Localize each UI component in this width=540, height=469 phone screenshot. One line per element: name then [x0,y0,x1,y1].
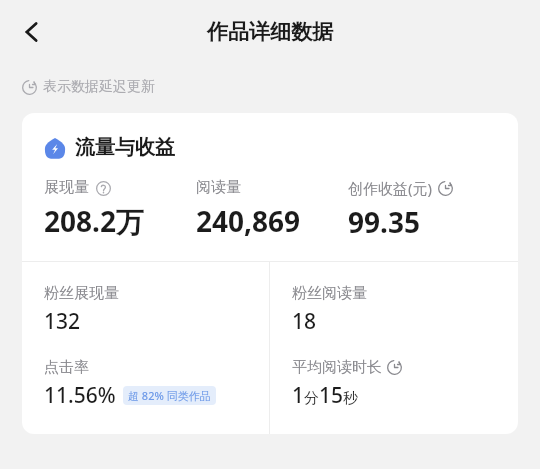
staticText: 132 [44,307,81,336]
staticText: 240,869 [196,202,301,240]
staticText: 超 82% 同类作品 [128,388,211,403]
staticText: 1分15秒 [292,381,359,410]
staticText: 18 [292,307,317,336]
staticText: 作品详细数据 [207,19,333,45]
button[interactable]: 平均阅读时长 [292,358,508,410]
staticText: 阅读量 [196,178,241,197]
staticText: 创作收益(元) [348,178,433,198]
staticText: 11.56% [44,381,116,410]
staticText: 点击率 [44,358,89,377]
staticText: 粉丝阅读量 [292,284,367,303]
staticText: 平均阅读时长 [292,358,382,377]
staticText: 展现量 [44,178,89,197]
button[interactable]: 粉丝展现量 [44,284,259,336]
button[interactable]: 展现量说明 [94,179,112,197]
staticText: 表示数据延迟更新 [43,78,155,96]
staticText: 99.35 [348,203,420,241]
staticText: 208.2万 [44,202,144,240]
button[interactable]: 粉丝阅读量 [292,284,508,336]
staticText: 粉丝展现量 [44,284,119,303]
button[interactable]: 点击率 [44,358,259,410]
staticText: 流量与收益 [75,135,175,160]
button[interactable]: Back [8,8,56,56]
